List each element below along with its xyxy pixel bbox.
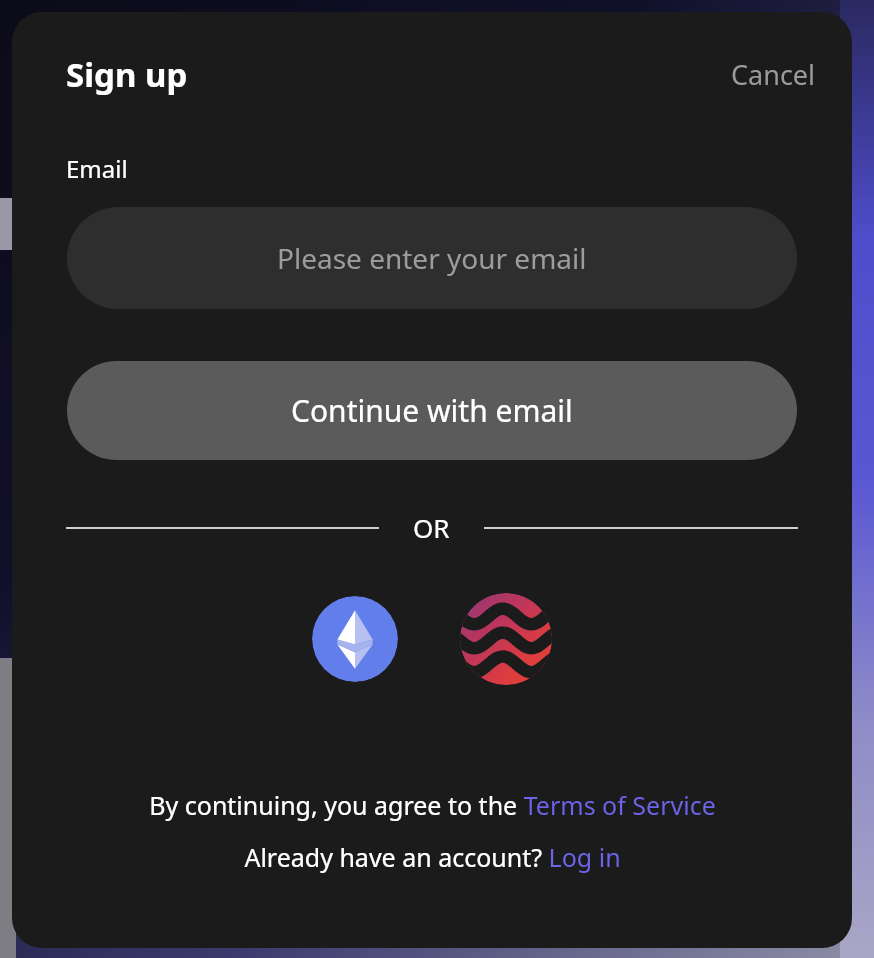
button[interactable]: Already have an account? Log in — [236, 838, 629, 876]
staticText: By continuing, you agree to the Terms of… — [149, 788, 716, 822]
button[interactable]: By continuing, you agree to the Terms of… — [141, 786, 724, 824]
button[interactable]: Continue with Sui wallet — [460, 593, 552, 685]
staticText: Continue with email — [291, 390, 573, 431]
staticText: Sign up — [66, 52, 188, 97]
staticText: Email — [66, 152, 128, 185]
button[interactable]: Continue with email — [67, 361, 797, 460]
button[interactable]: Please enter your email — [67, 207, 797, 309]
button[interactable]: Continue with Ethereum wallet — [312, 596, 398, 682]
button[interactable]: Cancel — [725, 52, 822, 97]
staticText: Already have an account? Log in — [244, 840, 621, 874]
staticText: OR — [413, 510, 450, 545]
staticText: Cancel — [731, 56, 816, 93]
staticText: Please enter your email — [277, 239, 587, 277]
